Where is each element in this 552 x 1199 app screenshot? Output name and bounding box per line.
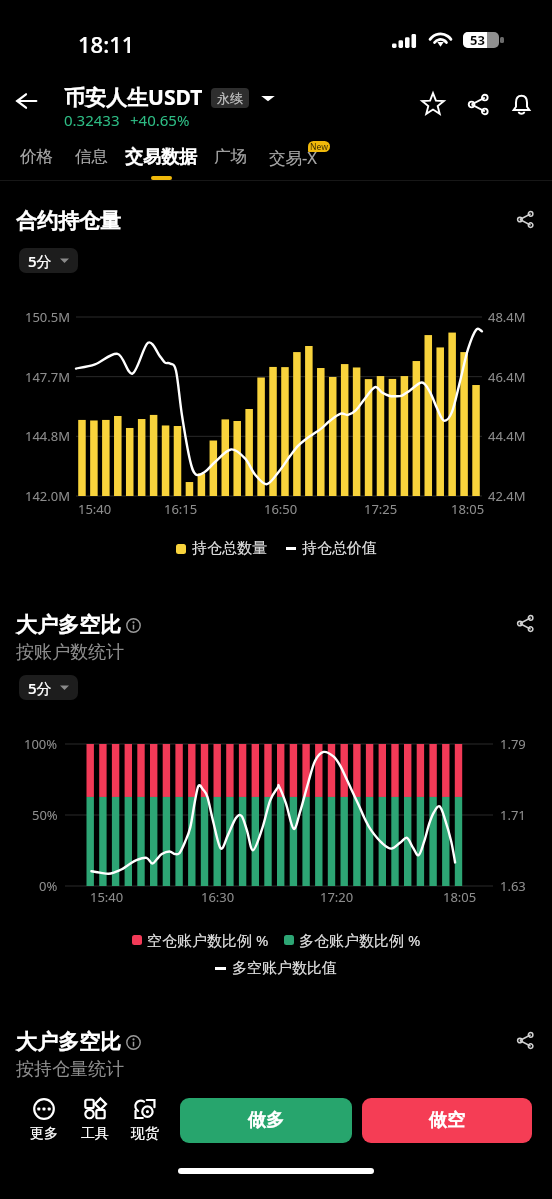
staticText: 44.4M [488,427,526,445]
button[interactable]: Share [505,603,545,643]
staticText: 交易-X [269,146,317,169]
button[interactable]: 做多 [180,1098,352,1143]
staticText: 信息 [75,146,108,167]
staticText: 大户多空比 [16,1029,121,1055]
staticText: 18:05 [451,500,485,518]
staticText: 大户多空比 [16,612,121,638]
staticText: 1.79 [500,735,526,753]
staticText: 17:25 [364,500,398,518]
staticText: New [310,141,329,152]
button[interactable]: More [16,1098,72,1143]
staticText: 现货 [131,1125,159,1143]
staticText: 15:40 [78,500,112,518]
staticText: 做空 [429,1109,465,1132]
staticText: 1.63 [500,877,526,895]
staticText: 48.4M [488,308,526,326]
button[interactable]: Share [505,1020,545,1060]
staticText: 做多 [248,1109,284,1132]
staticText: 150.5M [25,308,71,326]
button[interactable]: 价格 [0,136,72,180]
staticText: 价格 [20,146,53,167]
staticText: 广场 [214,146,247,167]
staticText: 1.71 [500,806,526,824]
button[interactable]: Spot [117,1098,173,1143]
staticText: 按账户数统计 [16,641,124,664]
staticText: 100% [24,735,58,753]
button[interactable]: 信息 [55,136,127,180]
staticText: 币安人生USDT [64,83,203,112]
staticText: 16:15 [164,500,198,518]
staticText: 持仓总数量 [192,539,267,558]
staticText: 按持仓量统计 [16,1058,124,1081]
staticText: 更多 [30,1125,58,1143]
staticText: 142.0M [25,487,71,505]
button[interactable]: Favorite [411,82,455,126]
staticText: 合约持仓量 [16,208,121,234]
staticText: 工具 [81,1125,109,1143]
staticText: 50% [32,806,58,824]
staticText: 17:20 [320,888,354,906]
staticText: 18:05 [443,888,477,906]
button[interactable]: 交易-X [257,136,329,180]
staticText: 147.7M [25,368,71,386]
button[interactable]: 5分 [19,675,78,700]
staticText: 5分 [28,678,52,698]
staticText: 持仓总价值 [302,539,377,558]
button[interactable]: Back [0,75,52,127]
staticText: +40.65% [130,110,190,130]
staticText: 42.4M [488,487,526,505]
staticText: 空仓账户数比例 % [147,930,269,950]
staticText: 46.4M [488,368,526,386]
staticText: 永续 [217,90,243,106]
button[interactable]: Share [505,199,545,239]
staticText: 5分 [28,251,52,271]
button[interactable]: 做空 [362,1098,532,1143]
button[interactable]: 5分 [19,248,78,273]
button[interactable]: Share [456,82,500,126]
staticText: 多仓账户数比例 % [299,930,421,950]
staticText: 多空账户数比值 [232,959,337,978]
staticText: 16:50 [264,500,298,518]
staticText: 交易数据 [125,146,197,169]
button[interactable]: Tools [67,1098,123,1143]
staticText: 53 [470,32,485,47]
staticText: 15:40 [90,888,124,906]
button[interactable]: Notifications [499,82,543,126]
button[interactable]: 广场 [194,136,266,180]
button[interactable]: 交易数据 [125,136,197,180]
staticText: 144.8M [25,427,71,445]
staticText: 16:30 [201,888,235,906]
staticText: 0.32433 [64,110,120,130]
staticText: 18:11 [78,29,135,59]
staticText: 0% [39,877,58,895]
